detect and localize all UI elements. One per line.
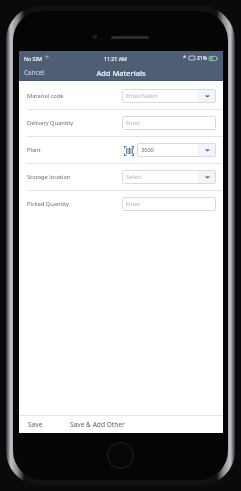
staticText: 11:21 AM — [104, 55, 127, 62]
staticText: No SIM — [24, 55, 42, 62]
staticText: Storage location — [27, 173, 122, 181]
button[interactable]: Plant — [19, 137, 223, 163]
staticText: Select — [126, 173, 198, 181]
staticText: Enter/Select — [126, 92, 198, 100]
button[interactable]: 3000 — [137, 143, 216, 157]
staticText: 3000 — [141, 146, 198, 154]
staticText: Delivery Quantity — [27, 119, 122, 127]
staticText: 21% — [197, 55, 207, 62]
button[interactable]: Material code — [19, 83, 223, 109]
staticText: Plant — [27, 146, 122, 154]
button[interactable]: Save & Add Other — [66, 416, 129, 433]
staticText: Save & Add Other — [70, 420, 125, 429]
button[interactable]: Enter — [122, 116, 216, 130]
staticText: Enter — [126, 200, 141, 208]
staticText: Material code — [27, 92, 122, 100]
staticText: Save — [28, 420, 43, 429]
button[interactable]: Save — [19, 416, 52, 433]
staticText: Picked Quantity — [27, 200, 122, 208]
staticText: Add Materials — [19, 68, 223, 78]
button[interactable]: Cancel — [19, 65, 49, 80]
button[interactable]: Picked Quantity — [19, 191, 223, 217]
staticText: Cancel — [24, 68, 44, 77]
button[interactable]: Select — [122, 170, 216, 184]
staticText: Enter — [126, 119, 141, 127]
button[interactable]: Storage location — [19, 164, 223, 190]
button[interactable]: Enter/Select — [122, 89, 216, 103]
button[interactable]: Delivery Quantity — [19, 110, 223, 136]
button[interactable]: Scan barcode — [122, 144, 135, 157]
button[interactable]: Home — [107, 442, 134, 469]
button[interactable]: Enter — [122, 197, 216, 211]
